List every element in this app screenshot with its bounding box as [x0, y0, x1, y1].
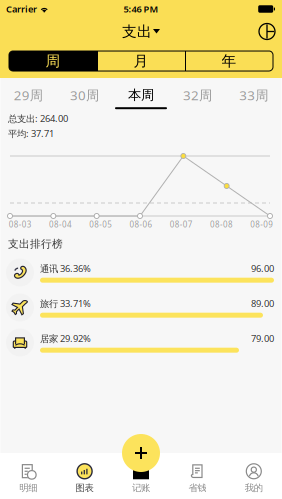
staticText: 79.00 [251, 332, 274, 345]
button[interactable]: 29周 [0, 79, 56, 110]
button[interactable]: 记账 [113, 458, 169, 499]
staticText: Carrier [6, 3, 37, 15]
staticText: 旅行 33.71% [40, 297, 91, 310]
button[interactable]: 月 [97, 51, 185, 71]
staticText: 总支出: 264.00 [8, 112, 68, 125]
button[interactable]: 33周 [226, 79, 282, 110]
button[interactable]: 32周 [169, 79, 226, 110]
button[interactable]: 本周 [113, 80, 169, 109]
button[interactable]: 30周 [56, 79, 113, 110]
button[interactable]: 我的 [226, 458, 282, 499]
staticText: 08-06 [129, 219, 152, 230]
button[interactable]: 支出 [116, 19, 166, 43]
staticText: 平均: 37.71 [8, 127, 54, 140]
staticText: 支出 [122, 22, 152, 40]
staticText: 本周 [128, 87, 154, 103]
staticText: 33周 [239, 86, 268, 104]
staticText: 年 [221, 52, 236, 70]
staticText: 29周 [14, 86, 43, 104]
staticText: 通讯 36.36% [40, 262, 91, 275]
button[interactable]: 图表 [56, 458, 113, 499]
staticText: 支出排行榜 [8, 237, 63, 250]
staticText: 08-03 [9, 219, 32, 230]
staticText: 居家 29.92% [40, 332, 91, 345]
staticText: 08-09 [250, 219, 273, 230]
staticText: 96.00 [251, 262, 274, 275]
staticText: 我的 [245, 482, 263, 494]
staticText: 月 [133, 52, 148, 70]
staticText: 图表 [76, 482, 94, 494]
button[interactable]: Statistics [253, 17, 281, 45]
button[interactable]: 省钱 [169, 458, 226, 499]
button[interactable]: 年 [185, 51, 273, 71]
staticText: 5:46 PM [123, 3, 158, 15]
staticText: 08-07 [170, 219, 193, 230]
staticText: 明细 [19, 482, 37, 494]
button[interactable]: Add record [122, 434, 160, 472]
staticText: 89.00 [251, 297, 274, 310]
button[interactable]: 明细 [0, 458, 56, 499]
staticText: 周 [45, 52, 60, 70]
staticText: 记账 [132, 482, 150, 494]
staticText: 省钱 [188, 482, 206, 494]
staticText: 32周 [183, 86, 212, 104]
staticText: 08-04 [49, 219, 72, 230]
button[interactable]: 周 [9, 51, 97, 71]
staticText: 30周 [70, 86, 99, 104]
staticText: 08-05 [89, 219, 112, 230]
staticText: 08-08 [210, 219, 233, 230]
